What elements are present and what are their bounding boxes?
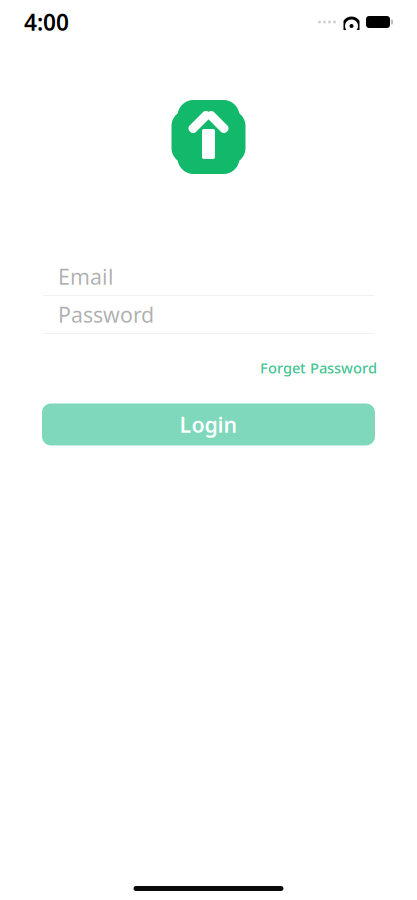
staticText: Login [179, 410, 237, 439]
button[interactable]: Login [42, 403, 375, 445]
staticText: Password [58, 300, 154, 329]
staticText: Forget Password [260, 358, 377, 377]
staticText: Email [58, 262, 114, 291]
button[interactable]: Forget Password [260, 354, 377, 381]
staticText: 4:00 [24, 7, 69, 37]
